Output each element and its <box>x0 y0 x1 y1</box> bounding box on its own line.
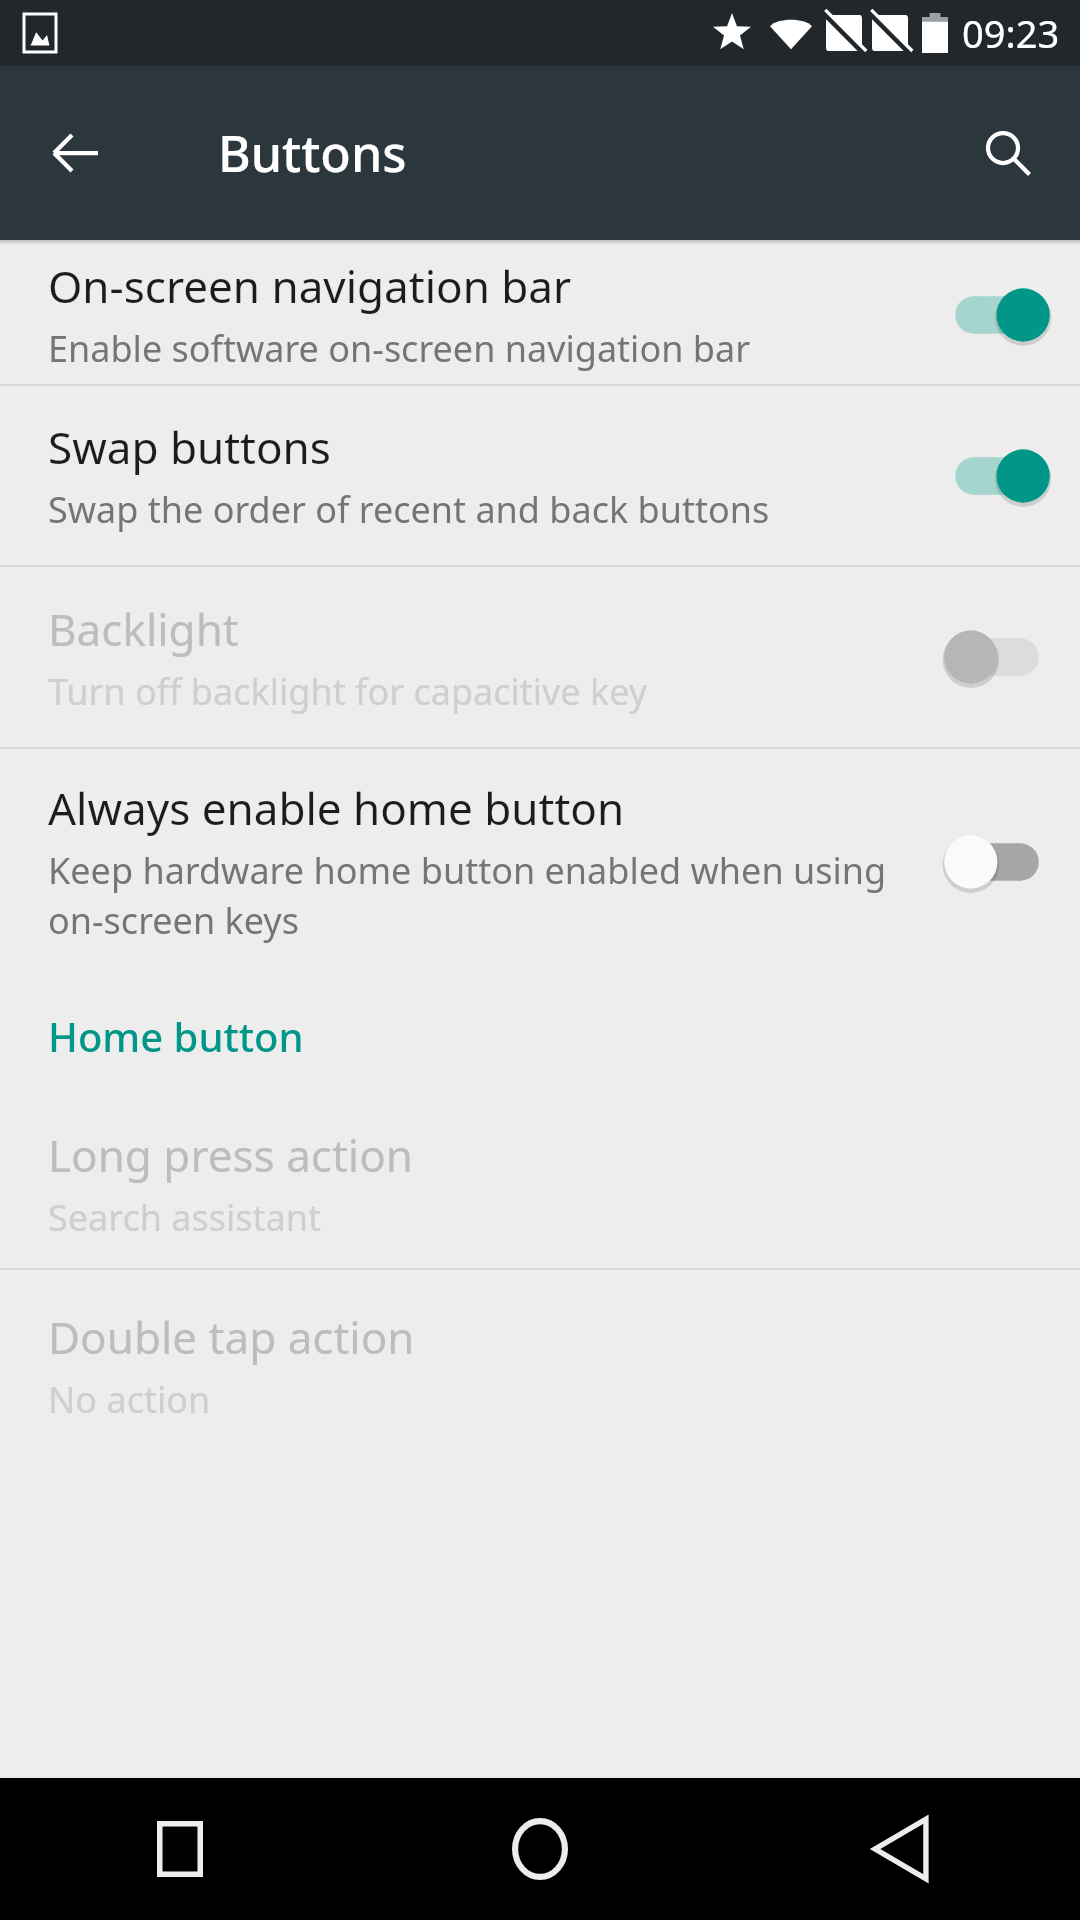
staticText: Enable software on-screen navigation bar <box>48 324 751 373</box>
staticText: Always enable home button <box>48 778 625 838</box>
button[interactable]: Long press action <box>0 1098 1080 1268</box>
staticText: On-screen navigation bar <box>48 256 572 316</box>
button[interactable]: Search <box>960 105 1056 201</box>
button[interactable]: Home <box>360 1778 720 1920</box>
staticText: Long press action <box>48 1125 413 1185</box>
button[interactable]: Double tap action <box>0 1270 1080 1460</box>
button[interactable]: Always enable home button <box>0 749 1080 974</box>
button[interactable]: Off <box>942 621 1052 693</box>
button[interactable]: Back <box>28 105 124 201</box>
button[interactable]: Back <box>720 1778 1080 1920</box>
button[interactable]: Backlight <box>0 567 1080 747</box>
staticText: Turn off backlight for capacitive key <box>48 667 648 716</box>
button[interactable]: On <box>942 279 1052 351</box>
staticText: Double tap action <box>48 1307 415 1367</box>
staticText: Search assistant <box>48 1193 321 1242</box>
staticText: Backlight <box>48 599 239 659</box>
staticText: Keep hardware home button enabled when u… <box>48 846 922 945</box>
button[interactable]: Swap buttons <box>0 386 1080 565</box>
staticText: Buttons <box>218 119 407 187</box>
button[interactable]: On <box>942 440 1052 512</box>
staticText: Swap buttons <box>48 417 331 477</box>
button[interactable]: On-screen navigation bar <box>0 245 1080 384</box>
staticText: Swap the order of recent and back button… <box>48 485 770 534</box>
button[interactable]: Off <box>942 826 1052 898</box>
staticText: 09:23 <box>962 7 1060 59</box>
staticText: Home button <box>48 1009 304 1063</box>
button[interactable]: Recents <box>0 1778 360 1920</box>
staticText: No action <box>48 1375 211 1424</box>
